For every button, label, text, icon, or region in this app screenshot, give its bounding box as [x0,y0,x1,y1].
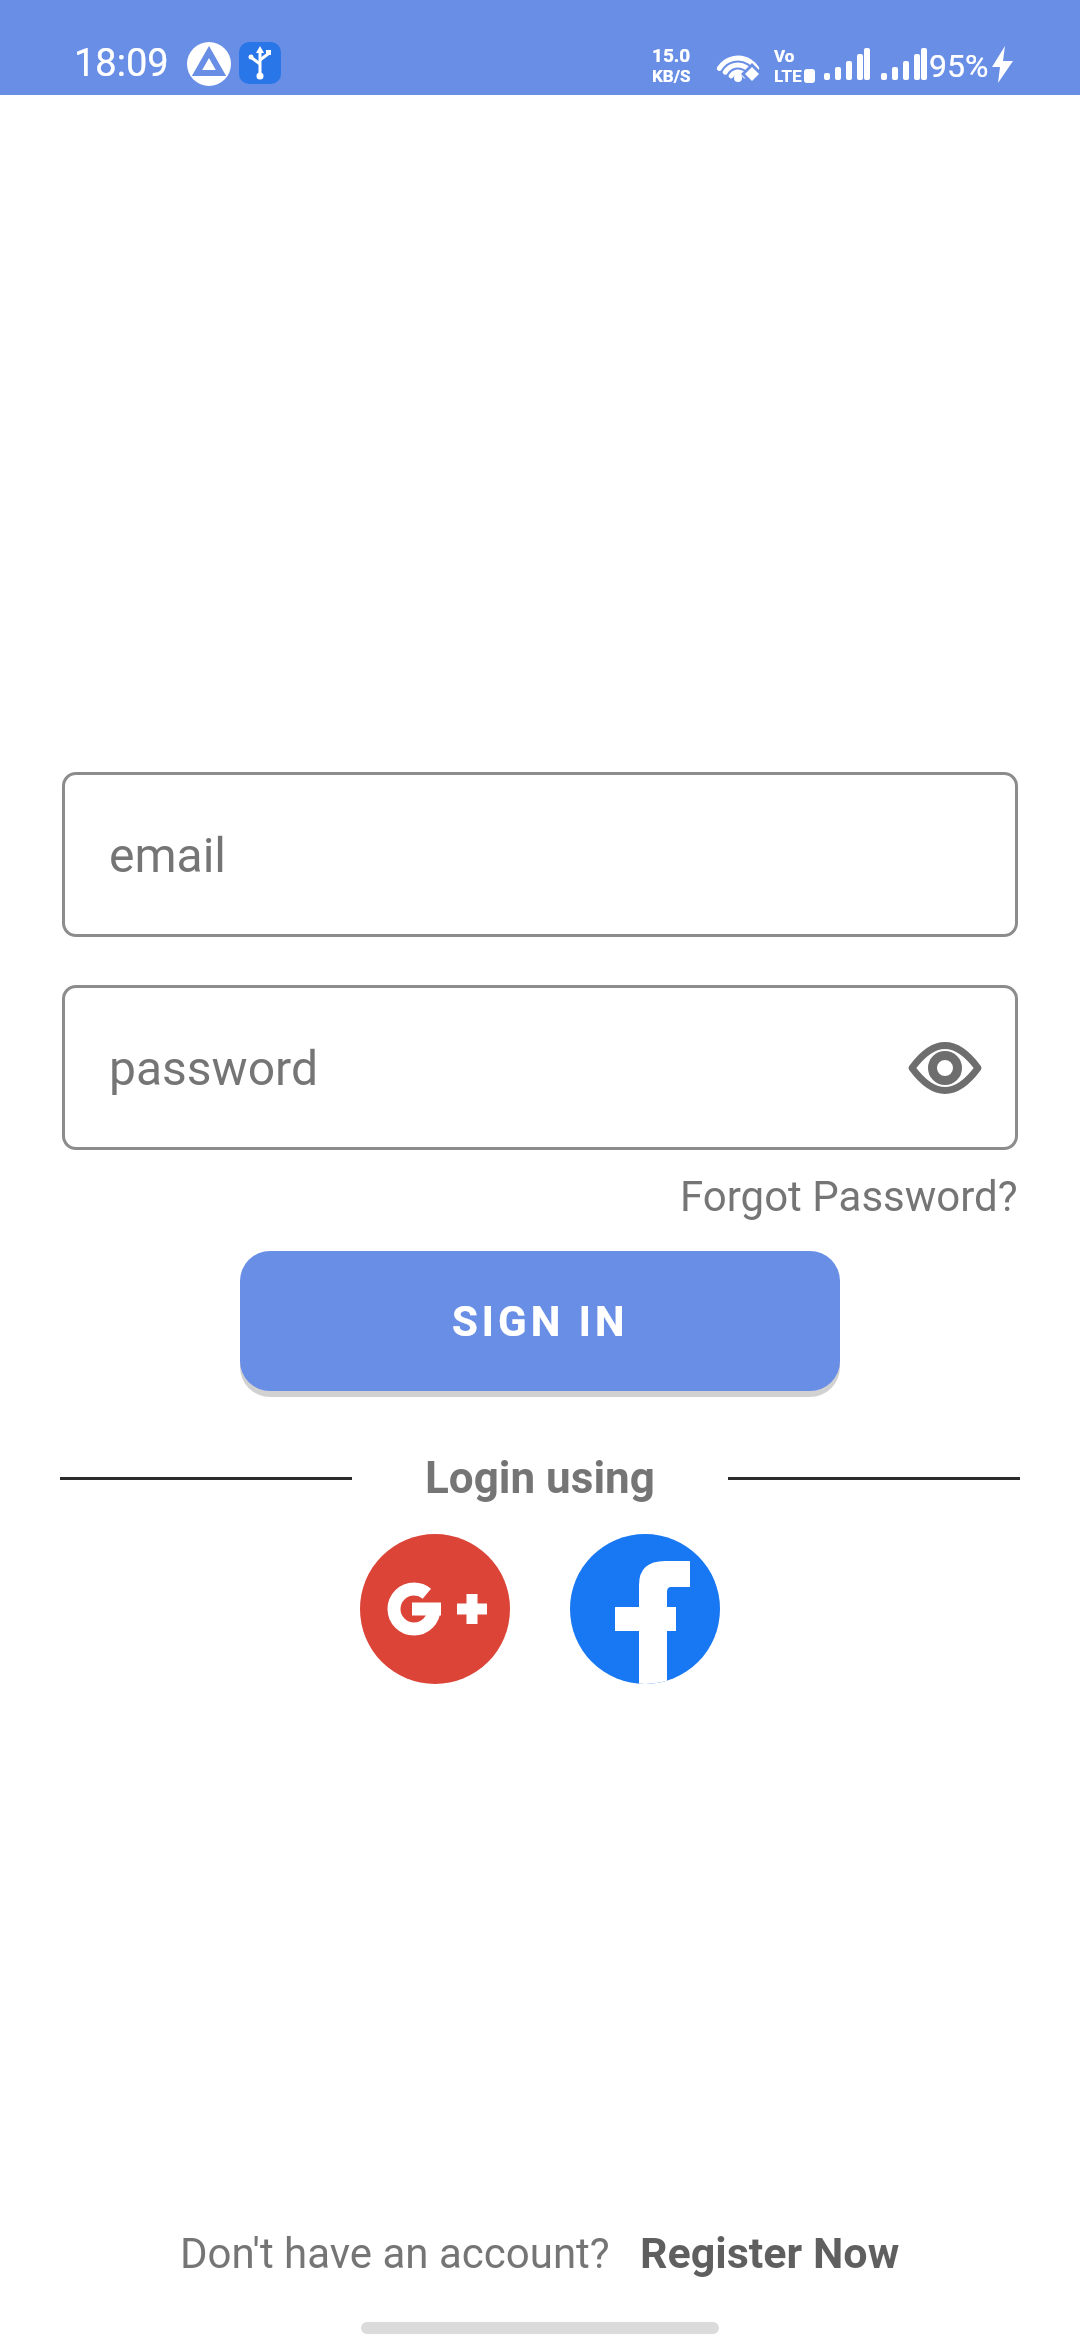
staticText: Login using [425,1452,655,1504]
button[interactable]: Don't have an account? [180,2228,900,2278]
button[interactable] [570,1534,720,1684]
staticText: LTE [774,66,802,86]
staticText: Don't have an account? [180,2229,610,2278]
staticText: KB/S [652,66,691,86]
button[interactable]: password [62,985,1018,1150]
button[interactable]: SIGN IN [240,1251,840,1391]
staticText: 18:09 [74,41,169,86]
staticText: Vo [774,46,795,66]
button[interactable] [360,1534,510,1684]
staticText: 95% [929,47,989,85]
button[interactable]: Forgot Password? [680,1172,1018,1221]
button[interactable]: email [62,772,1018,937]
staticText: SIGN IN [452,1297,629,1346]
staticText: password [109,1040,318,1096]
staticText: Register Now [640,2228,900,2278]
staticText: email [109,827,226,883]
staticText: 15.0 [652,44,691,66]
